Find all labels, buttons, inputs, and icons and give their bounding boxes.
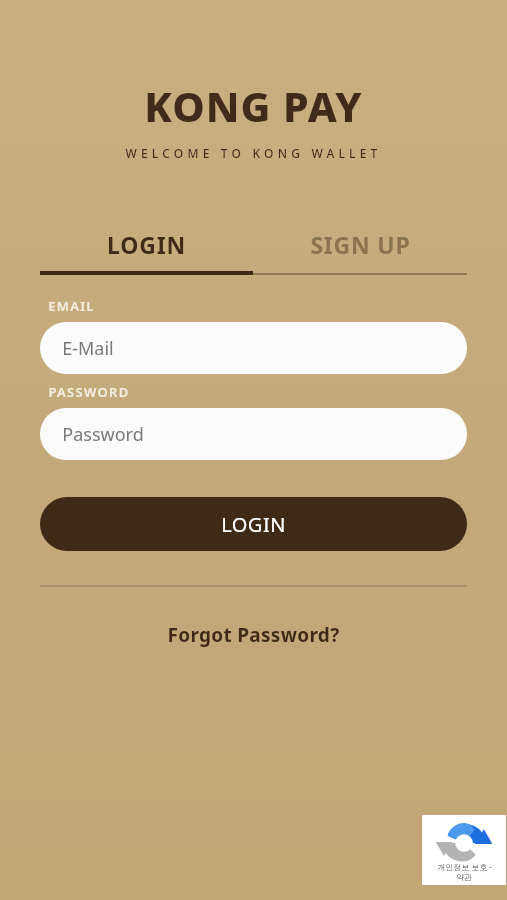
button[interactable]: reCAPTCHA privacy — [422, 815, 506, 885]
button[interactable]: SIGN UP — [253, 227, 467, 275]
button[interactable]: Password — [40, 408, 467, 460]
staticText: LOGIN — [221, 511, 286, 538]
button[interactable]: LOGIN — [40, 227, 253, 275]
staticText: KONG PAY — [0, 78, 507, 134]
staticText: 약관 — [456, 872, 472, 882]
staticText: LOGIN — [107, 229, 186, 260]
staticText: PASSWORD — [48, 383, 130, 401]
button[interactable]: E-Mail — [40, 322, 467, 374]
staticText: Forgot Password? — [167, 622, 340, 648]
staticText: E-Mail — [62, 336, 114, 361]
button[interactable]: LOGIN — [40, 497, 467, 551]
staticText: SIGN UP — [310, 229, 411, 260]
staticText: EMAIL — [48, 297, 95, 315]
staticText: Password — [62, 422, 144, 447]
button[interactable]: Forgot Password? — [40, 619, 467, 651]
staticText: WELCOME TO KONG WALLET — [0, 145, 507, 161]
staticText: 개인정보 보호 - — [437, 861, 492, 872]
